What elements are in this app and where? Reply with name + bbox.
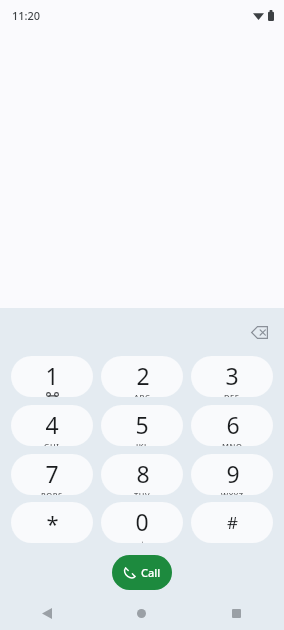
staticText: GHI — [44, 441, 60, 446]
button[interactable]: 5 — [101, 405, 183, 446]
staticText: * — [46, 508, 59, 538]
button[interactable]: 2 — [101, 356, 183, 397]
button[interactable]: 8 — [101, 454, 183, 495]
button[interactable]: Call — [112, 555, 172, 590]
staticText: ABC — [134, 392, 151, 397]
staticText: 8 — [136, 458, 150, 489]
staticText: 4 — [45, 409, 59, 440]
staticText: JKL — [136, 441, 149, 446]
staticText: + — [140, 538, 145, 543]
staticText: 3 — [225, 360, 239, 391]
button[interactable]: * — [11, 502, 93, 543]
staticText: DEF — [224, 392, 240, 397]
button[interactable]: Back — [0, 597, 94, 630]
button[interactable]: Recent apps — [189, 597, 284, 630]
button[interactable]: 0 — [101, 502, 183, 543]
staticText: 11:20 — [12, 8, 41, 23]
button[interactable]: # — [191, 502, 273, 543]
staticText: # — [227, 511, 238, 534]
button[interactable]: 7 — [11, 454, 93, 495]
staticText: 2 — [136, 360, 150, 391]
button[interactable]: 4 — [11, 405, 93, 446]
button[interactable]: 3 — [191, 356, 273, 397]
staticText: MNO — [222, 441, 243, 446]
staticText: WXYZ — [221, 490, 244, 495]
staticText: 0 — [135, 506, 149, 537]
staticText: Call — [141, 565, 161, 580]
staticText: 9 — [226, 458, 240, 489]
button[interactable]: Home — [94, 597, 189, 630]
button[interactable]: Backspace — [241, 314, 277, 350]
button[interactable]: 9 — [191, 454, 273, 495]
button[interactable]: 6 — [191, 405, 273, 446]
staticText: 5 — [135, 409, 149, 440]
staticText: TUV — [134, 490, 151, 495]
button[interactable]: 1 — [11, 356, 93, 397]
staticText: 7 — [45, 458, 59, 489]
staticText: PQRS — [41, 490, 63, 495]
staticText: 6 — [226, 409, 240, 440]
staticText: 1 — [45, 360, 59, 391]
